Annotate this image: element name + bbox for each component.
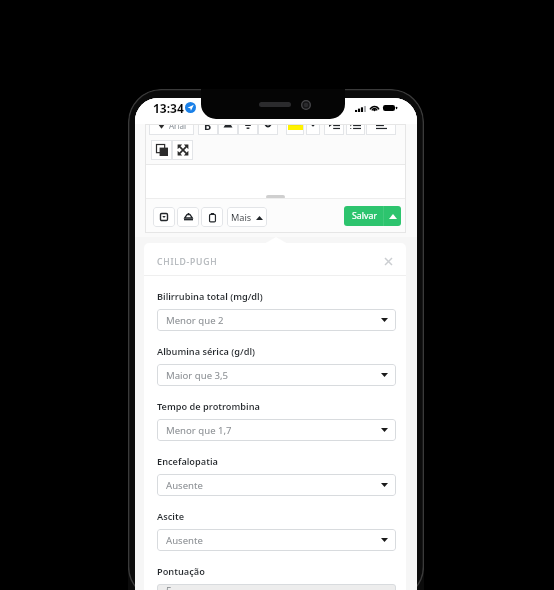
staticText: CHILD-PUGH: [157, 256, 218, 268]
staticText: Maior que 3,5: [166, 369, 229, 382]
button[interactable]: Mais: [227, 207, 267, 227]
staticText: B: [204, 124, 212, 133]
button[interactable]: Formatting tool: [324, 124, 344, 135]
staticText: Salvar: [352, 210, 378, 222]
staticText: Menor que 1,7: [166, 424, 232, 437]
staticText: Tempo de protrombina: [157, 400, 260, 413]
button[interactable]: Imprimir: [177, 207, 199, 227]
button[interactable]: Formatting tool: [198, 124, 218, 135]
staticText: Ascite: [157, 510, 185, 523]
button[interactable]: Formatting tool: [149, 124, 194, 135]
button[interactable]: Formatting tool: [218, 124, 238, 135]
button[interactable]: Fechar: [381, 254, 395, 268]
staticText: 13:34: [153, 100, 184, 116]
button[interactable]: Menor que 1,7: [157, 419, 396, 441]
staticText: Pontuação: [157, 565, 205, 578]
staticText: Arial: [169, 124, 187, 131]
button[interactable]: Modelos: [201, 207, 223, 227]
staticText: Encefalopatia: [157, 455, 218, 468]
button[interactable]: Formatting tool: [238, 124, 258, 135]
button[interactable]: Maior que 3,5: [157, 364, 396, 386]
staticText: Menor que 2: [166, 314, 224, 327]
staticText: Albumina sérica (g/dl): [157, 345, 256, 358]
staticText: Ausente: [166, 479, 203, 492]
button[interactable]: Formatting tool: [151, 140, 172, 160]
button[interactable]: Formatting tool: [286, 124, 304, 135]
staticText: Mais: [231, 211, 252, 224]
button[interactable]: Ausente: [157, 529, 396, 551]
button[interactable]: Menor que 2: [157, 309, 396, 331]
button[interactable]: Formatting tool: [258, 124, 278, 135]
button[interactable]: Formatting tool: [346, 124, 365, 135]
staticText: 5: [166, 584, 172, 590]
button[interactable]: Formatting tool: [172, 140, 193, 160]
button[interactable]: Inserir imagem: [153, 207, 175, 227]
button[interactable]: Ausente: [157, 474, 396, 496]
button[interactable]: Salvar: [344, 206, 401, 226]
staticText: Bilirrubina total (mg/dl): [157, 290, 263, 303]
button[interactable]: Formatting tool: [306, 124, 320, 135]
button[interactable]: Formatting tool: [366, 124, 396, 135]
staticText: Ausente: [166, 534, 203, 547]
